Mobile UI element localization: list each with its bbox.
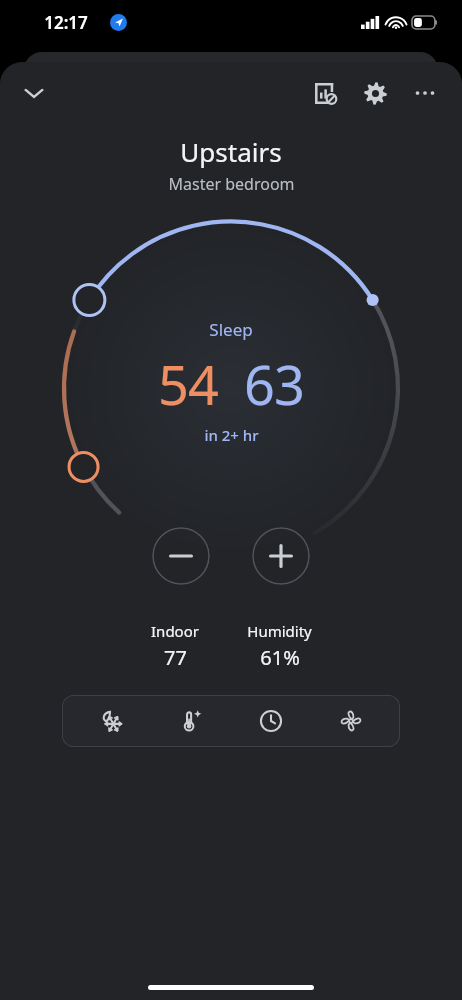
button[interactable]: Settings xyxy=(352,70,398,116)
staticText: 77 xyxy=(164,644,187,671)
staticText: 12:17 xyxy=(44,11,88,34)
staticText: in 2+ hr xyxy=(204,425,259,445)
button[interactable]: History off xyxy=(302,70,348,116)
button[interactable]: Cool mode xyxy=(80,696,142,746)
staticText: Sleep xyxy=(209,318,253,341)
staticText: Indoor xyxy=(151,621,199,641)
button[interactable]: More options xyxy=(402,70,448,116)
staticText: 54 xyxy=(158,347,218,421)
staticText: Humidity xyxy=(247,621,312,641)
button[interactable]: Decrease temperature xyxy=(152,527,210,585)
staticText: Upstairs xyxy=(180,134,282,169)
button[interactable]: Heat mode xyxy=(160,696,222,746)
button[interactable]: Fan xyxy=(320,696,382,746)
button[interactable]: Collapse xyxy=(10,69,58,117)
button[interactable]: Increase temperature xyxy=(252,527,310,585)
button[interactable]: Schedule xyxy=(240,696,302,746)
staticText: 61% xyxy=(260,644,300,671)
staticText: 63 xyxy=(244,347,304,421)
staticText: Master bedroom xyxy=(168,173,295,195)
